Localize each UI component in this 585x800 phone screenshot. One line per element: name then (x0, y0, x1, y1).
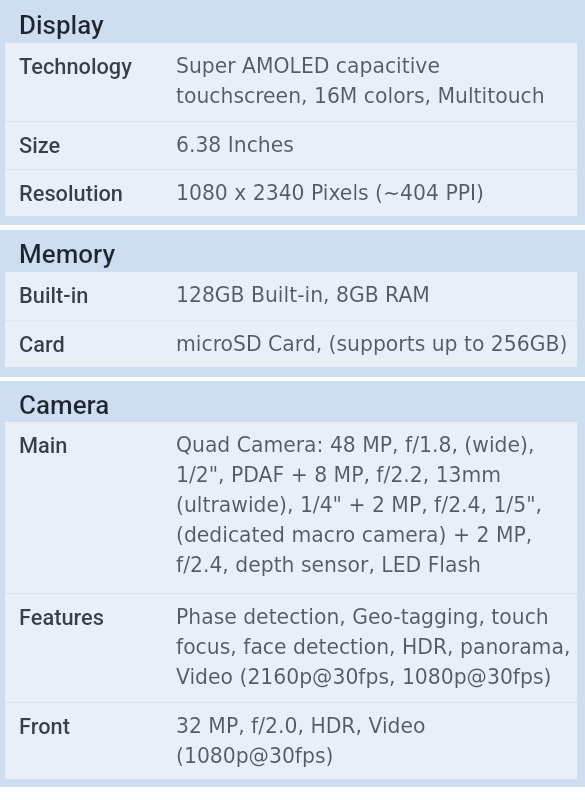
staticText: 6.38 Inches (176, 133, 294, 157)
button[interactable]: Built-in (5, 272, 577, 309)
staticText: Built-in (19, 283, 176, 309)
staticText: Technology (19, 54, 176, 80)
staticText: Size (19, 133, 176, 159)
button[interactable]: Size (5, 122, 577, 159)
button[interactable]: Main (5, 422, 577, 577)
button[interactable]: Features (5, 594, 577, 689)
button[interactable]: Card (5, 321, 577, 358)
staticText: Front (19, 714, 176, 740)
staticText: Quad Camera: 48 MP, f/1.8, (wide), 1/2",… (176, 433, 542, 577)
staticText: Memory (19, 239, 116, 269)
button[interactable]: Technology (5, 43, 577, 108)
staticText: Super AMOLED capacitive touchscreen, 16M… (176, 54, 545, 108)
staticText: 1080 x 2340 Pixels (~404 PPI) (176, 181, 484, 205)
staticText: Resolution (19, 181, 176, 207)
staticText: 128GB Built-in, 8GB RAM (176, 283, 430, 307)
button[interactable]: Front (5, 703, 577, 768)
staticText: Card (19, 332, 176, 358)
button[interactable]: Memory (0, 230, 585, 272)
staticText: microSD Card, (supports up to 256GB) (176, 332, 568, 356)
staticText: Main (19, 433, 176, 459)
staticText: Display (19, 10, 104, 40)
button[interactable]: Resolution (5, 170, 577, 207)
staticText: Phase detection, Geo-tagging, touch focu… (176, 605, 571, 689)
staticText: Camera (19, 390, 110, 420)
staticText: 32 MP, f/2.0, HDR, Video (1080p@30fps) (176, 714, 426, 768)
staticText: Features (19, 605, 176, 631)
button[interactable]: Display (0, 0, 585, 43)
button[interactable]: Camera (0, 381, 585, 422)
